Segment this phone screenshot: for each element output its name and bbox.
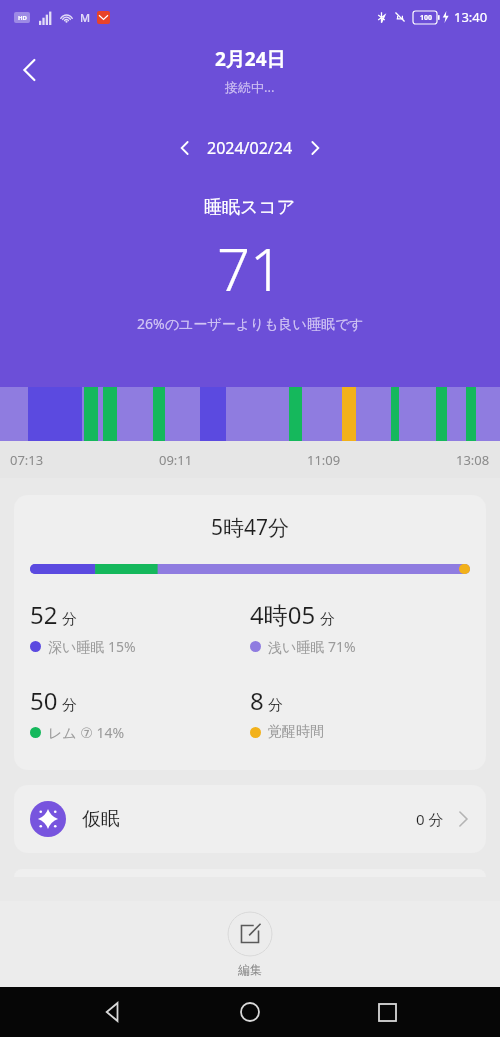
staticText: 52 (30, 598, 58, 631)
staticText: 仮眠 (82, 807, 120, 831)
staticText: 07:13 (10, 451, 44, 469)
staticText: 0 分 (416, 809, 444, 829)
staticText: 睡眠スコア (204, 196, 296, 219)
staticText: 分 (62, 610, 77, 629)
button[interactable]: Recents (363, 988, 411, 1036)
button[interactable]: 仮眠 (14, 785, 486, 853)
staticText: 2月24日 (215, 46, 286, 72)
staticText: 11:09 (307, 451, 341, 469)
staticText: 71 (217, 229, 284, 308)
staticText: 深い睡眠 15% (48, 637, 136, 656)
button[interactable]: Previous day (167, 130, 203, 166)
staticText: 接続中... (225, 78, 275, 96)
staticText: 浅い睡眠 71% (268, 637, 356, 656)
button[interactable]: Home (226, 988, 274, 1036)
button[interactable]: Back (6, 46, 54, 94)
staticText: 分 (268, 696, 283, 715)
staticText: HD (18, 14, 27, 22)
staticText: 5時47分 (211, 513, 290, 542)
staticText: 26%のユーザーよりも良い睡眠です (137, 314, 364, 333)
staticText: 13:40 (454, 8, 488, 26)
staticText: 分 (62, 696, 77, 715)
button[interactable]: 5時47分 (14, 495, 486, 770)
staticText: 100 (420, 13, 433, 23)
staticText: レム ⑦ 14% (48, 723, 125, 742)
staticText: 編集 (238, 962, 262, 977)
staticText: 2024/02/24 (207, 137, 293, 159)
staticText: M (80, 10, 91, 25)
staticText: 8 (250, 684, 264, 717)
staticText: 09:11 (159, 451, 193, 469)
staticText: 覚醒時間 (268, 723, 324, 741)
button[interactable]: Next day (297, 130, 333, 166)
staticText: 分 (320, 610, 335, 629)
button[interactable]: Edit (227, 911, 273, 957)
button[interactable]: Back (89, 988, 137, 1036)
staticText: 4時05 (250, 598, 316, 631)
staticText: 50 (30, 684, 58, 717)
staticText: 13:08 (456, 451, 490, 469)
